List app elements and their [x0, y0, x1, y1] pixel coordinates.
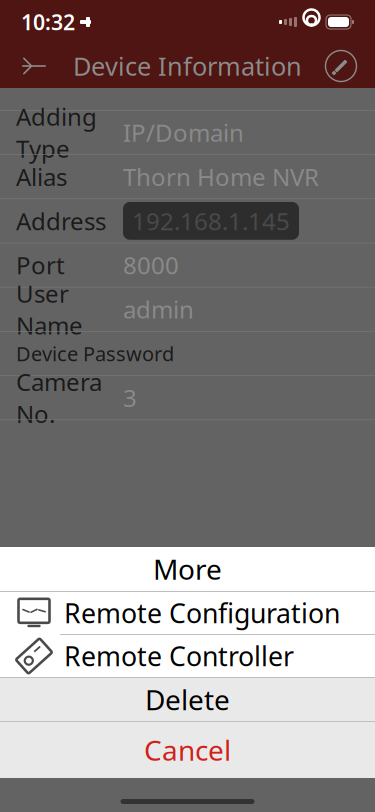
staticText: Port	[16, 249, 65, 281]
staticText: 10:32	[21, 8, 75, 36]
button[interactable]: Remote Configuration	[0, 592, 375, 634]
staticText: 3	[123, 382, 137, 414]
button[interactable]: Adding Type	[0, 111, 375, 154]
staticText: Camera No.	[16, 366, 102, 429]
button[interactable]: Delete	[0, 678, 375, 721]
button[interactable]: Address	[0, 199, 375, 243]
staticText: Remote Controller	[64, 638, 294, 674]
button[interactable]: Edit	[313, 44, 369, 88]
staticText: More	[153, 550, 222, 588]
staticText: User Name	[16, 277, 83, 341]
staticText: Alias	[16, 161, 67, 193]
staticText: 192.168.1.145	[132, 205, 290, 237]
button[interactable]: Camera No.	[0, 376, 375, 419]
staticText: Device Password	[16, 340, 174, 367]
staticText: Address	[16, 205, 106, 237]
staticText: Adding Type	[16, 101, 97, 164]
staticText: IP/Domain	[123, 116, 244, 148]
staticText: Thorn Home NVR	[123, 161, 319, 193]
staticText: 8000	[123, 249, 179, 281]
button[interactable]: Port	[0, 243, 375, 287]
staticText: Cancel	[144, 731, 231, 769]
staticText: Remote Configuration	[64, 595, 340, 631]
button[interactable]: Remote Controller	[0, 635, 375, 677]
button[interactable]: Device Password	[0, 332, 375, 375]
button[interactable]: Alias	[0, 155, 375, 198]
staticText: Delete	[145, 681, 230, 718]
button[interactable]: Back	[6, 44, 62, 88]
button[interactable]: Cancel	[0, 722, 375, 778]
staticText: admin	[123, 293, 194, 325]
button[interactable]: User Name	[0, 287, 375, 331]
staticText: Device Information	[73, 49, 302, 83]
